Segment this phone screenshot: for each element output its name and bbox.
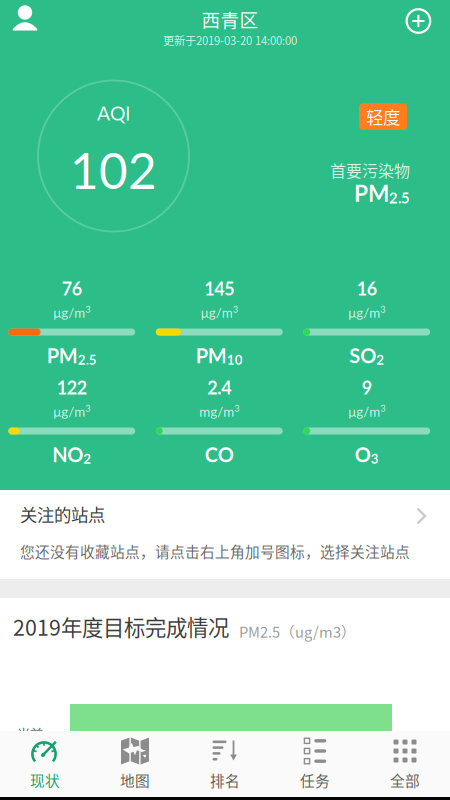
staticText: 首要污染物 [330, 158, 410, 182]
staticText: O [355, 442, 371, 466]
staticText: 3 [234, 402, 239, 414]
staticText: μg/m [53, 403, 85, 419]
staticText: 76 [62, 278, 82, 299]
button[interactable]: 现状 [0, 733, 90, 798]
staticText: 2.5 [389, 189, 410, 207]
staticText: CO [205, 442, 234, 466]
staticText: μg/m [348, 403, 380, 419]
staticText: 3 [380, 402, 385, 414]
staticText: 地图 [120, 769, 150, 791]
button[interactable]: 关注的站点 [0, 490, 450, 580]
staticText: 2019年度目标完成情况 [13, 611, 229, 642]
staticText: 3 [371, 450, 379, 466]
staticText: 任务 [300, 769, 330, 791]
staticText: 3 [380, 303, 385, 315]
button[interactable]: 任务 [270, 733, 360, 798]
staticText: μg/m [201, 304, 233, 320]
staticText: 10 [227, 351, 243, 367]
staticText: NO [52, 442, 83, 466]
staticText: 关注的站点 [20, 501, 105, 527]
staticText: 全部 [390, 769, 420, 791]
button[interactable]: 地图 [90, 733, 180, 798]
staticText: 您还没有收藏站点，请点击右上角加号图标，选择关注站点 [20, 540, 410, 562]
staticText: 轻度 [366, 104, 400, 129]
staticText: 9 [362, 377, 372, 398]
staticText: 3 [233, 303, 238, 315]
staticText: 2 [376, 351, 384, 367]
staticText: mg/m [199, 403, 234, 419]
staticText: AQI [97, 101, 130, 125]
staticText: 102 [70, 140, 157, 200]
staticText: 2 [83, 450, 91, 466]
staticText: 16 [357, 278, 377, 299]
button[interactable]: Add station [405, 8, 431, 34]
staticText: 145 [204, 278, 234, 299]
staticText: 排名 [210, 769, 240, 791]
staticText: PM [354, 179, 389, 207]
staticText: μg/m [53, 304, 85, 320]
staticText: 122 [57, 377, 87, 398]
staticText: 3 [85, 402, 90, 414]
staticText: 西青区 [201, 5, 258, 32]
staticText: SO [349, 343, 376, 367]
button[interactable]: 全部 [360, 733, 450, 798]
button[interactable]: Profile [13, 5, 38, 31]
staticText: 2.5 [78, 351, 97, 367]
staticText: PM [47, 343, 78, 367]
staticText: μg/m [348, 304, 380, 320]
staticText: 2.4 [207, 377, 231, 398]
staticText: 3 [85, 303, 90, 315]
staticText: PM [196, 343, 227, 367]
button[interactable]: 排名 [180, 733, 270, 798]
staticText: 当前 [17, 724, 43, 744]
staticText: 现状 [30, 769, 60, 791]
staticText: 更新于2019-03-20 14:00:00 [163, 32, 297, 48]
staticText: PM2.5（ug/m3） [239, 621, 356, 642]
